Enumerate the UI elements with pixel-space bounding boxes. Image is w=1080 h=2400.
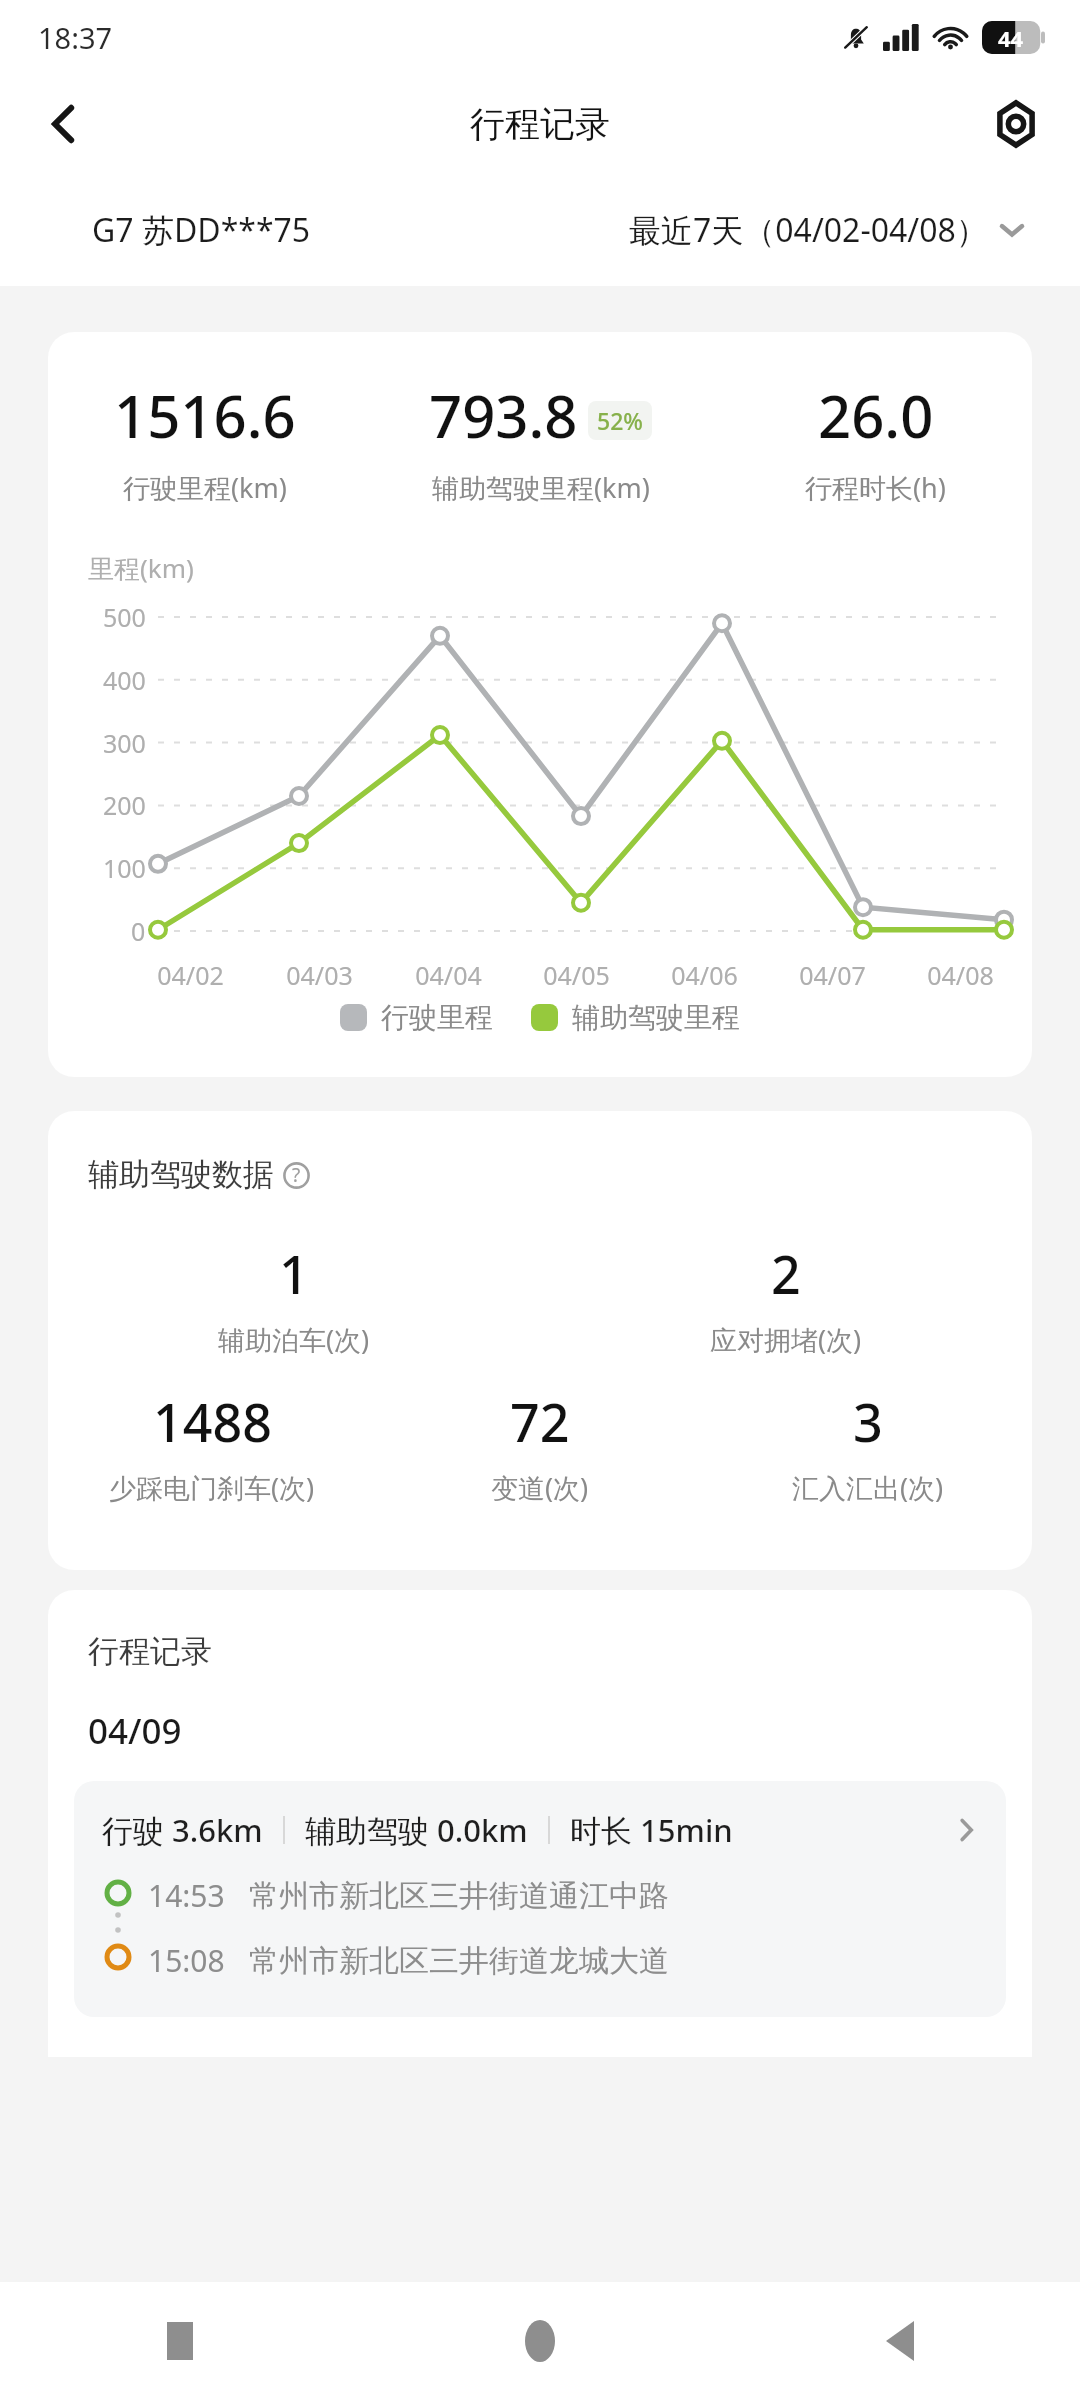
staticText: 200: [103, 788, 146, 822]
staticText: 14:53: [148, 1875, 225, 1916]
staticText: 辅助驾驶数据: [88, 1155, 274, 1194]
staticText: 18:37: [38, 18, 113, 57]
staticText: 辅助泊车(次): [218, 1321, 370, 1358]
staticText: 里程(km): [88, 550, 194, 586]
button[interactable]: Back: [26, 86, 102, 162]
staticText: 793.8: [429, 376, 578, 455]
staticText: 常州市新北区三井街道通江中路: [249, 1877, 669, 1915]
button[interactable]: Back: [720, 2282, 1080, 2400]
staticText: 行程记录: [88, 1632, 212, 1671]
staticText: 3: [853, 1386, 883, 1457]
staticText: 行驶里程(km): [123, 469, 287, 506]
staticText: 44: [998, 23, 1024, 53]
staticText: 应对拥堵(次): [710, 1321, 862, 1358]
staticText: 辅助驾驶里程(km): [432, 469, 650, 506]
staticText: 行程记录: [470, 102, 610, 146]
staticText: 时长 15min: [570, 1809, 733, 1851]
staticText: 72: [510, 1386, 570, 1457]
staticText: 04/07: [799, 958, 866, 992]
button[interactable]: Home: [360, 2282, 720, 2400]
staticText: 1516.6: [114, 376, 296, 455]
staticText: 最近7天（04/02-04/08）: [629, 208, 988, 252]
staticText: 汇入汇出(次): [792, 1469, 944, 1506]
staticText: 04/08: [927, 958, 994, 992]
staticText: 04/09: [88, 1707, 182, 1755]
button[interactable]: 行驶 3.6km: [74, 1781, 1006, 2017]
button[interactable]: G7 苏DD***75: [92, 208, 311, 252]
button[interactable]: Recent apps: [0, 2282, 360, 2400]
staticText: 400: [103, 663, 146, 697]
staticText: 辅助驾驶 0.0km: [305, 1809, 528, 1851]
staticText: 300: [103, 726, 146, 760]
staticText: 26.0: [818, 376, 934, 455]
button[interactable]: Help: [280, 1159, 312, 1191]
staticText: 行程时长(h): [805, 469, 946, 506]
staticText: 2: [771, 1238, 801, 1309]
staticText: 52%: [597, 405, 643, 436]
staticText: 少踩电门刹车(次): [109, 1469, 315, 1506]
staticText: 04/05: [543, 958, 610, 992]
button[interactable]: 最近7天（04/02-04/08）: [629, 208, 1026, 252]
staticText: 变道(次): [491, 1469, 589, 1506]
staticText: 04/02: [157, 958, 224, 992]
staticText: 100: [103, 851, 146, 885]
staticText: 常州市新北区三井街道龙城大道: [249, 1942, 669, 1980]
staticText: 04/03: [286, 958, 353, 992]
staticText: ?: [292, 1162, 301, 1188]
staticText: 1: [279, 1238, 309, 1309]
staticText: 0: [131, 914, 146, 948]
staticText: G7 苏DD***75: [92, 208, 311, 252]
staticText: 行驶里程: [381, 1000, 493, 1035]
staticText: 04/04: [415, 958, 482, 992]
staticText: 行驶 3.6km: [102, 1809, 263, 1851]
staticText: 04/06: [671, 958, 738, 992]
staticText: 1488: [153, 1386, 272, 1457]
staticText: 15:08: [148, 1940, 225, 1981]
button[interactable]: Settings: [978, 86, 1054, 162]
staticText: 辅助驾驶里程: [572, 1000, 740, 1035]
staticText: 500: [103, 600, 146, 634]
